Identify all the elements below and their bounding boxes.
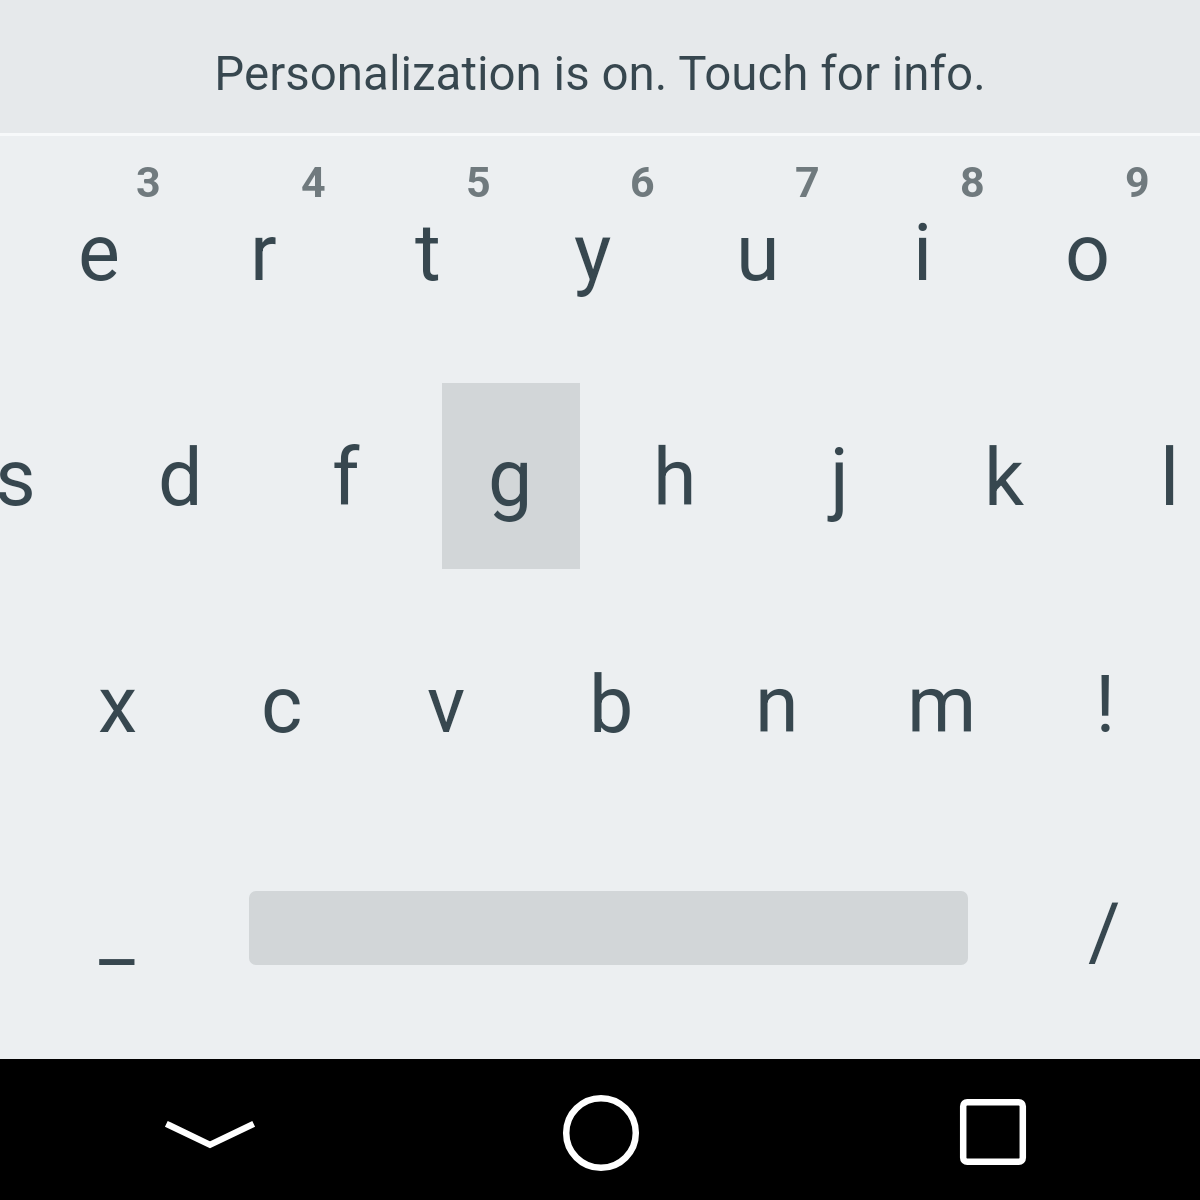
button[interactable]: y — [510, 160, 675, 346]
staticText: t — [415, 207, 441, 300]
button[interactable]: n — [694, 612, 859, 798]
staticText: Personalization is on. Touch for info. — [214, 46, 986, 102]
staticText: 4 — [301, 157, 326, 207]
button[interactable]: k — [922, 385, 1087, 571]
staticText: 8 — [960, 157, 985, 207]
staticText: d — [158, 432, 203, 525]
staticText: j — [830, 432, 849, 525]
button[interactable]: ! — [1023, 612, 1188, 798]
button[interactable]: c — [199, 612, 364, 798]
button[interactable]: u — [675, 160, 840, 346]
staticText: x — [98, 659, 138, 752]
button[interactable]: Back — [130, 1059, 290, 1200]
staticText: o — [1065, 207, 1111, 300]
button[interactable]: Recent apps — [912, 1059, 1072, 1200]
button[interactable]: Personalization is on. Touch for info. — [0, 0, 1200, 133]
button[interactable]: / — [1022, 839, 1187, 1025]
staticText: e — [78, 207, 120, 300]
button[interactable]: d — [98, 385, 263, 571]
button[interactable]: r — [181, 160, 346, 346]
button[interactable]: x — [35, 612, 200, 798]
button[interactable]: o — [1005, 160, 1170, 346]
staticText: n — [755, 659, 799, 752]
staticText: 7 — [795, 157, 820, 207]
staticText: i — [913, 207, 933, 300]
staticText: h — [653, 432, 697, 525]
staticText: 6 — [630, 157, 655, 207]
button[interactable]: v — [364, 612, 529, 798]
staticText: v — [427, 659, 466, 752]
button[interactable]: m — [859, 612, 1024, 798]
button[interactable]: h — [592, 385, 757, 571]
staticText: k — [984, 432, 1025, 525]
button[interactable]: l — [1087, 385, 1200, 571]
button[interactable]: t — [345, 160, 510, 346]
staticText: s — [0, 432, 36, 525]
staticText: m — [907, 659, 977, 752]
staticText: f — [332, 432, 360, 525]
staticText: ! — [1095, 659, 1116, 752]
staticText: u — [736, 207, 780, 300]
staticText: 9 — [1125, 157, 1150, 207]
staticText: c — [261, 659, 303, 752]
staticText: / — [1088, 886, 1121, 979]
staticText: b — [589, 659, 634, 752]
button[interactable]: e — [16, 160, 181, 346]
staticText: y — [574, 207, 612, 300]
button[interactable]: j — [757, 385, 922, 571]
staticText: l — [1160, 432, 1180, 525]
button[interactable]: g — [428, 385, 593, 571]
staticText: 5 — [466, 157, 491, 207]
button[interactable]: _ — [34, 839, 199, 1025]
button[interactable]: Home — [520, 1059, 680, 1200]
staticText: 3 — [136, 157, 161, 207]
staticText: _ — [99, 886, 135, 979]
button[interactable]: f — [263, 385, 428, 571]
button[interactable]: i — [840, 160, 1005, 346]
staticText: g — [488, 432, 533, 525]
button[interactable]: b — [529, 612, 694, 798]
staticText: r — [250, 207, 277, 300]
button[interactable]: s — [0, 385, 98, 571]
